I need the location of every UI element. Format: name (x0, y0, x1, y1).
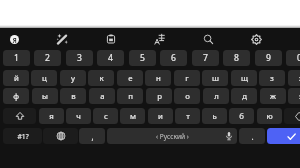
button[interactable]: к (88, 70, 114, 86)
staticText: ю (266, 111, 273, 122)
button[interactable]: ч (66, 108, 91, 124)
button[interactable]: 6 (160, 50, 187, 66)
staticText: ь (212, 111, 217, 122)
staticText: е (128, 73, 133, 84)
staticText: 7 (203, 52, 208, 64)
staticText: 6 (171, 52, 176, 64)
staticText: а (100, 91, 105, 102)
button[interactable]: ы (32, 88, 58, 104)
button[interactable]: р (146, 88, 172, 104)
staticText: ‹ Русский › (156, 132, 189, 141)
button[interactable]: . (239, 128, 265, 144)
button[interactable]: 7 (192, 50, 219, 66)
button[interactable]: Enter (267, 128, 300, 144)
staticText: х (299, 73, 300, 84)
button[interactable]: э (288, 88, 300, 104)
staticText: й (14, 73, 19, 84)
staticText: к (99, 73, 104, 84)
staticText: 5 (140, 52, 145, 64)
button[interactable]: л (203, 88, 229, 104)
staticText: щ (241, 73, 248, 84)
button[interactable]: и (148, 108, 173, 124)
staticText: м (130, 111, 136, 122)
button[interactable]: , (79, 128, 105, 144)
button[interactable]: м (120, 108, 145, 124)
button[interactable]: Smart compose (51, 28, 73, 50)
button[interactable]: с (93, 108, 118, 124)
button[interactable]: й (3, 70, 29, 86)
button[interactable]: Gboard language (3, 28, 25, 50)
staticText: , (91, 131, 94, 142)
button[interactable]: т (175, 108, 200, 124)
button[interactable]: я (39, 108, 64, 124)
button[interactable]: Backspace (284, 108, 300, 124)
staticText: 2 (45, 52, 50, 64)
staticText: ч (76, 111, 81, 122)
button[interactable]: е (117, 70, 143, 86)
button[interactable]: щ (231, 70, 257, 86)
button[interactable]: Shift (3, 108, 36, 124)
button[interactable]: 0 (286, 50, 300, 66)
button[interactable]: ш (202, 70, 228, 86)
button[interactable]: п (117, 88, 143, 104)
staticText: з (270, 73, 274, 84)
button[interactable]: ‹ Русский › (107, 128, 237, 144)
staticText: р (157, 91, 162, 102)
staticText: г (185, 73, 189, 84)
staticText: н (156, 73, 161, 84)
staticText: 0 (297, 52, 300, 64)
button[interactable]: д (231, 88, 257, 104)
staticText: 8 (234, 52, 239, 64)
staticText: ы (42, 91, 48, 102)
button[interactable]: г (174, 70, 200, 86)
button[interactable]: 5 (129, 50, 156, 66)
staticText: . (251, 131, 254, 142)
button[interactable]: ф (3, 88, 29, 104)
staticText: п (128, 91, 133, 102)
button[interactable]: б (229, 108, 254, 124)
staticText: 3 (77, 52, 82, 64)
button[interactable]: 9 (255, 50, 282, 66)
staticText: и (158, 111, 163, 122)
staticText: Я (12, 36, 17, 44)
staticText: в (71, 91, 76, 102)
button[interactable]: 1 (3, 50, 30, 66)
staticText: 4 (108, 52, 113, 64)
button[interactable]: в (60, 88, 86, 104)
button[interactable]: #1? (3, 128, 42, 144)
staticText: 1 (14, 52, 19, 64)
staticText: э (299, 91, 300, 102)
button[interactable]: Switch language (43, 128, 78, 144)
button[interactable]: Settings (245, 28, 267, 50)
staticText: у (71, 73, 75, 84)
button[interactable]: ь (202, 108, 227, 124)
button[interactable]: 2 (34, 50, 61, 66)
button[interactable]: 4 (97, 50, 124, 66)
staticText: я (49, 111, 54, 122)
staticText: л (214, 91, 219, 102)
button[interactable]: Search (197, 28, 219, 50)
button[interactable]: ю (257, 108, 282, 124)
button[interactable]: 3 (66, 50, 93, 66)
staticText: б (239, 111, 244, 122)
button[interactable]: а (89, 88, 115, 104)
staticText: ц (42, 73, 47, 84)
staticText: 9 (266, 52, 271, 64)
button[interactable]: ж (260, 88, 286, 104)
button[interactable]: ц (31, 70, 57, 86)
button[interactable]: 8 (223, 50, 250, 66)
button[interactable]: Voice input (221, 128, 236, 144)
button[interactable]: у (60, 70, 86, 86)
staticText: ж (270, 91, 276, 102)
staticText: ф (13, 91, 19, 102)
button[interactable]: о (174, 88, 200, 104)
staticText: д (242, 91, 247, 102)
button[interactable]: х (288, 70, 300, 86)
staticText: о (185, 91, 190, 102)
button[interactable]: Clipboard (100, 28, 122, 50)
staticText: т (186, 111, 190, 122)
button[interactable]: з (259, 70, 285, 86)
staticText: #1? (17, 132, 29, 141)
button[interactable]: н (145, 70, 171, 86)
button[interactable]: Translate (148, 28, 170, 50)
